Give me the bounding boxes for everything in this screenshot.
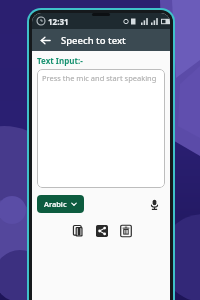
button[interactable]: Delete bbox=[118, 223, 133, 238]
staticText: Text Input:- bbox=[37, 55, 83, 66]
button[interactable]: Press the mic and start speaking bbox=[37, 69, 165, 188]
button[interactable]: Microphone bbox=[145, 195, 163, 213]
button[interactable]: Copy bbox=[70, 223, 85, 238]
staticText: 12:31 bbox=[48, 16, 69, 27]
button[interactable]: Share bbox=[94, 223, 109, 238]
button[interactable]: Arabic bbox=[37, 195, 84, 213]
button[interactable]: Back bbox=[37, 32, 53, 48]
staticText: Arabic bbox=[44, 199, 67, 209]
staticText: Press the mic and start speaking bbox=[42, 73, 157, 83]
staticText: Speech to text bbox=[61, 34, 126, 47]
